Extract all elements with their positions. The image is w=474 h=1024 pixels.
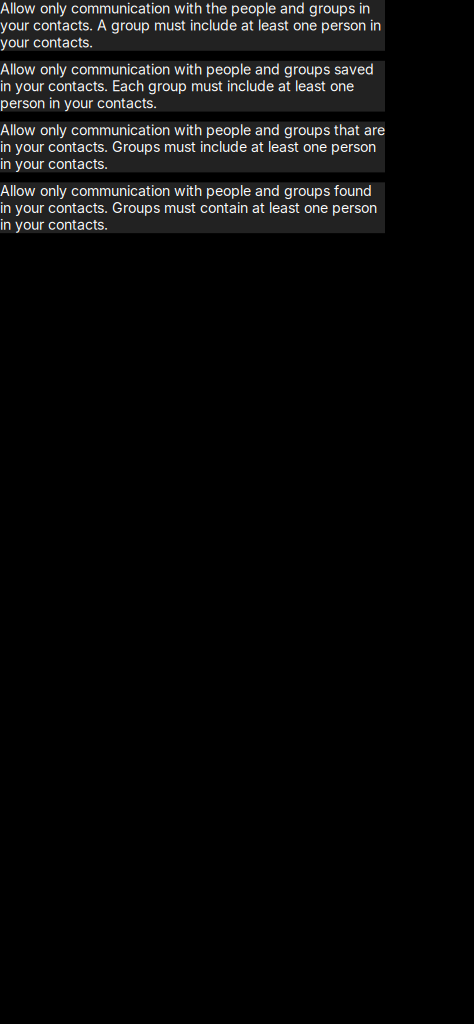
staticText: Allow only communication with people and… (0, 182, 377, 233)
staticText: Allow only communication with people and… (0, 61, 374, 112)
staticText: Allow only communication with people and… (0, 122, 385, 172)
staticText: Allow only communication with the people… (0, 0, 381, 51)
